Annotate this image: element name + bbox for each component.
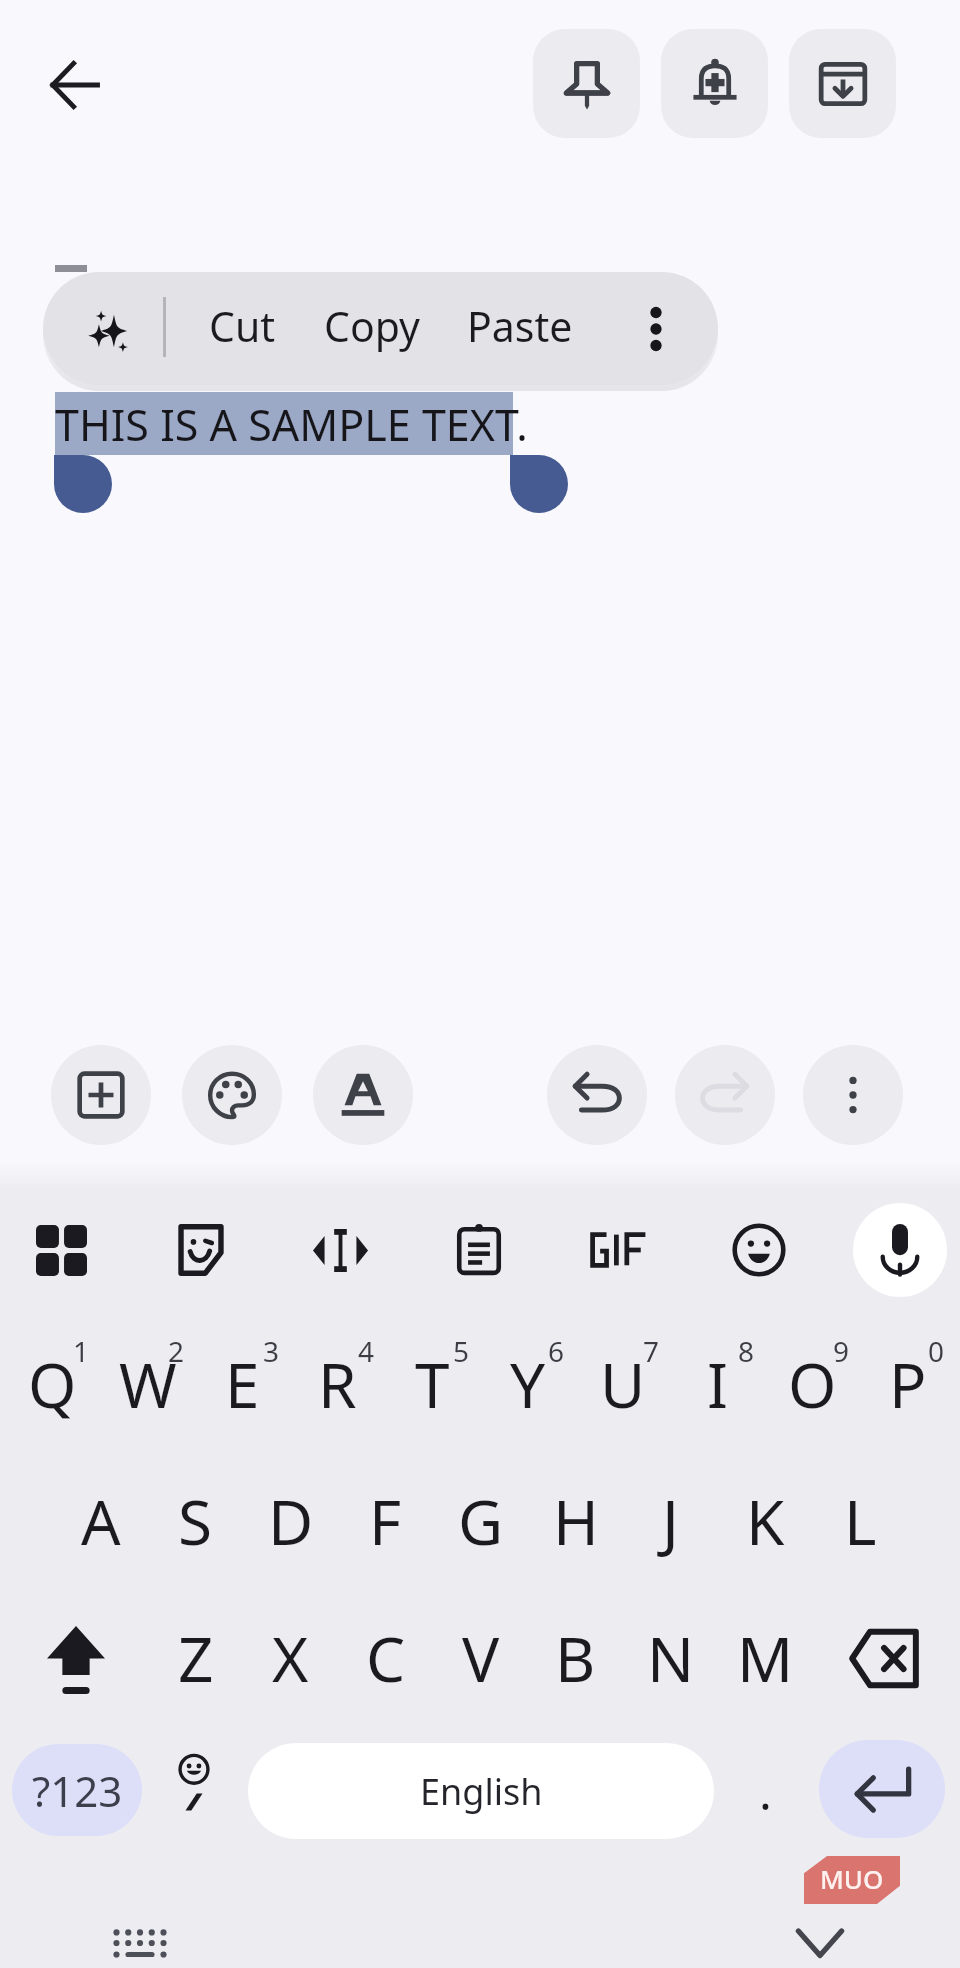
button[interactable]: Paste [458, 272, 582, 385]
button[interactable]: P [860, 1320, 955, 1448]
button[interactable]: F [338, 1457, 433, 1585]
staticText: Paste [467, 298, 573, 354]
button[interactable]: H [528, 1457, 623, 1585]
button[interactable]: X [243, 1594, 338, 1722]
button[interactable]: R [290, 1320, 385, 1448]
staticText: I [707, 1342, 729, 1426]
staticText: F [369, 1479, 402, 1563]
button[interactable]: Emoji [715, 1206, 803, 1294]
button[interactable]: Add [51, 1045, 151, 1145]
button[interactable]: More options [803, 1045, 903, 1145]
button[interactable]: Apps [17, 1206, 105, 1294]
button[interactable]: W [100, 1320, 195, 1448]
staticText: H [553, 1479, 599, 1563]
button[interactable]: Cut [200, 272, 284, 385]
staticText: . [759, 1759, 772, 1824]
button[interactable]: V [433, 1594, 528, 1722]
button[interactable]: D [243, 1457, 338, 1585]
button[interactable]: AI actions [61, 272, 155, 385]
staticText: 4 [358, 1332, 375, 1370]
staticText: 2 [168, 1332, 185, 1370]
staticText: M [737, 1616, 794, 1700]
button[interactable]: More options [611, 272, 701, 385]
staticText: U [600, 1342, 646, 1426]
button[interactable]: Backspace [812, 1594, 956, 1722]
button[interactable]: Hide keyboard [784, 1907, 856, 1968]
staticText: O [788, 1342, 837, 1426]
button[interactable]: G [433, 1457, 528, 1585]
button[interactable]: J [623, 1457, 718, 1585]
button[interactable]: . [730, 1743, 800, 1839]
button[interactable]: Archive [789, 29, 896, 138]
staticText: D [268, 1479, 314, 1563]
button[interactable]: Back [29, 39, 121, 131]
button[interactable]: Stickers [157, 1206, 245, 1294]
button[interactable]: Shift [4, 1597, 148, 1725]
staticText: ?123 [32, 1762, 123, 1819]
button[interactable]: S [148, 1457, 243, 1585]
staticText: Copy [324, 298, 421, 354]
button[interactable]: Enter [819, 1740, 945, 1838]
button[interactable]: Selection handle [54, 455, 112, 513]
button[interactable]: Pin [533, 29, 640, 138]
button[interactable]: English [248, 1743, 714, 1839]
staticText: B [555, 1616, 596, 1700]
button[interactable]: L [813, 1457, 908, 1585]
button[interactable]: Emoji and comma [157, 1741, 231, 1827]
staticText: THIS IS A SAMPLE TEXT. [55, 395, 528, 454]
staticText: R [318, 1342, 357, 1426]
button[interactable]: K [718, 1457, 813, 1585]
button[interactable]: C [338, 1594, 433, 1722]
staticText: 8 [738, 1332, 755, 1370]
staticText: T [415, 1342, 450, 1426]
staticText: 1 [73, 1332, 90, 1370]
button[interactable]: Copy [316, 272, 428, 385]
button[interactable]: A [53, 1457, 148, 1585]
button[interactable]: M [718, 1594, 813, 1722]
staticText: C [366, 1616, 406, 1700]
button[interactable]: Q [5, 1320, 100, 1448]
button[interactable]: Keyboard settings [104, 1907, 176, 1968]
staticText: Y [510, 1342, 546, 1426]
staticText: P [889, 1342, 927, 1426]
staticText: J [662, 1479, 679, 1563]
staticText: 9 [833, 1332, 850, 1370]
staticText: V [462, 1616, 500, 1700]
button[interactable]: Selection handle [510, 455, 568, 513]
button[interactable]: Background colour [182, 1045, 282, 1145]
staticText: 5 [453, 1332, 470, 1370]
staticText: MUO [820, 1861, 884, 1896]
button[interactable]: T [385, 1320, 480, 1448]
staticText: 3 [263, 1332, 280, 1370]
staticText: 7 [643, 1332, 660, 1370]
staticText: A [81, 1479, 121, 1563]
button[interactable]: E [195, 1320, 290, 1448]
button[interactable]: I [670, 1320, 765, 1448]
button[interactable]: Voice input [853, 1203, 947, 1297]
staticText: G [458, 1479, 504, 1563]
staticText: N [647, 1616, 695, 1700]
staticText: E [225, 1342, 260, 1426]
staticText: X [272, 1616, 309, 1700]
staticText: English [420, 1767, 543, 1816]
button[interactable]: ?123 [12, 1744, 142, 1836]
button[interactable]: Clipboard [435, 1206, 523, 1294]
button[interactable]: Add reminder [661, 29, 768, 138]
button[interactable]: Text editing [296, 1206, 384, 1294]
button[interactable]: Undo [547, 1045, 647, 1145]
button[interactable]: O [765, 1320, 860, 1448]
button[interactable]: U [575, 1320, 670, 1448]
staticText: Cut [209, 298, 276, 354]
staticText: 6 [548, 1332, 565, 1370]
button[interactable]: N [623, 1594, 718, 1722]
staticText: Q [28, 1342, 77, 1426]
button[interactable]: B [528, 1594, 623, 1722]
button[interactable]: Text formatting [313, 1045, 413, 1145]
staticText: Z [178, 1616, 214, 1700]
button[interactable]: GIF [575, 1206, 663, 1294]
button[interactable]: Y [480, 1320, 575, 1448]
staticText: L [844, 1479, 877, 1563]
button[interactable]: Redo [675, 1045, 775, 1145]
staticText: K [746, 1479, 785, 1563]
button[interactable]: Z [148, 1594, 243, 1722]
